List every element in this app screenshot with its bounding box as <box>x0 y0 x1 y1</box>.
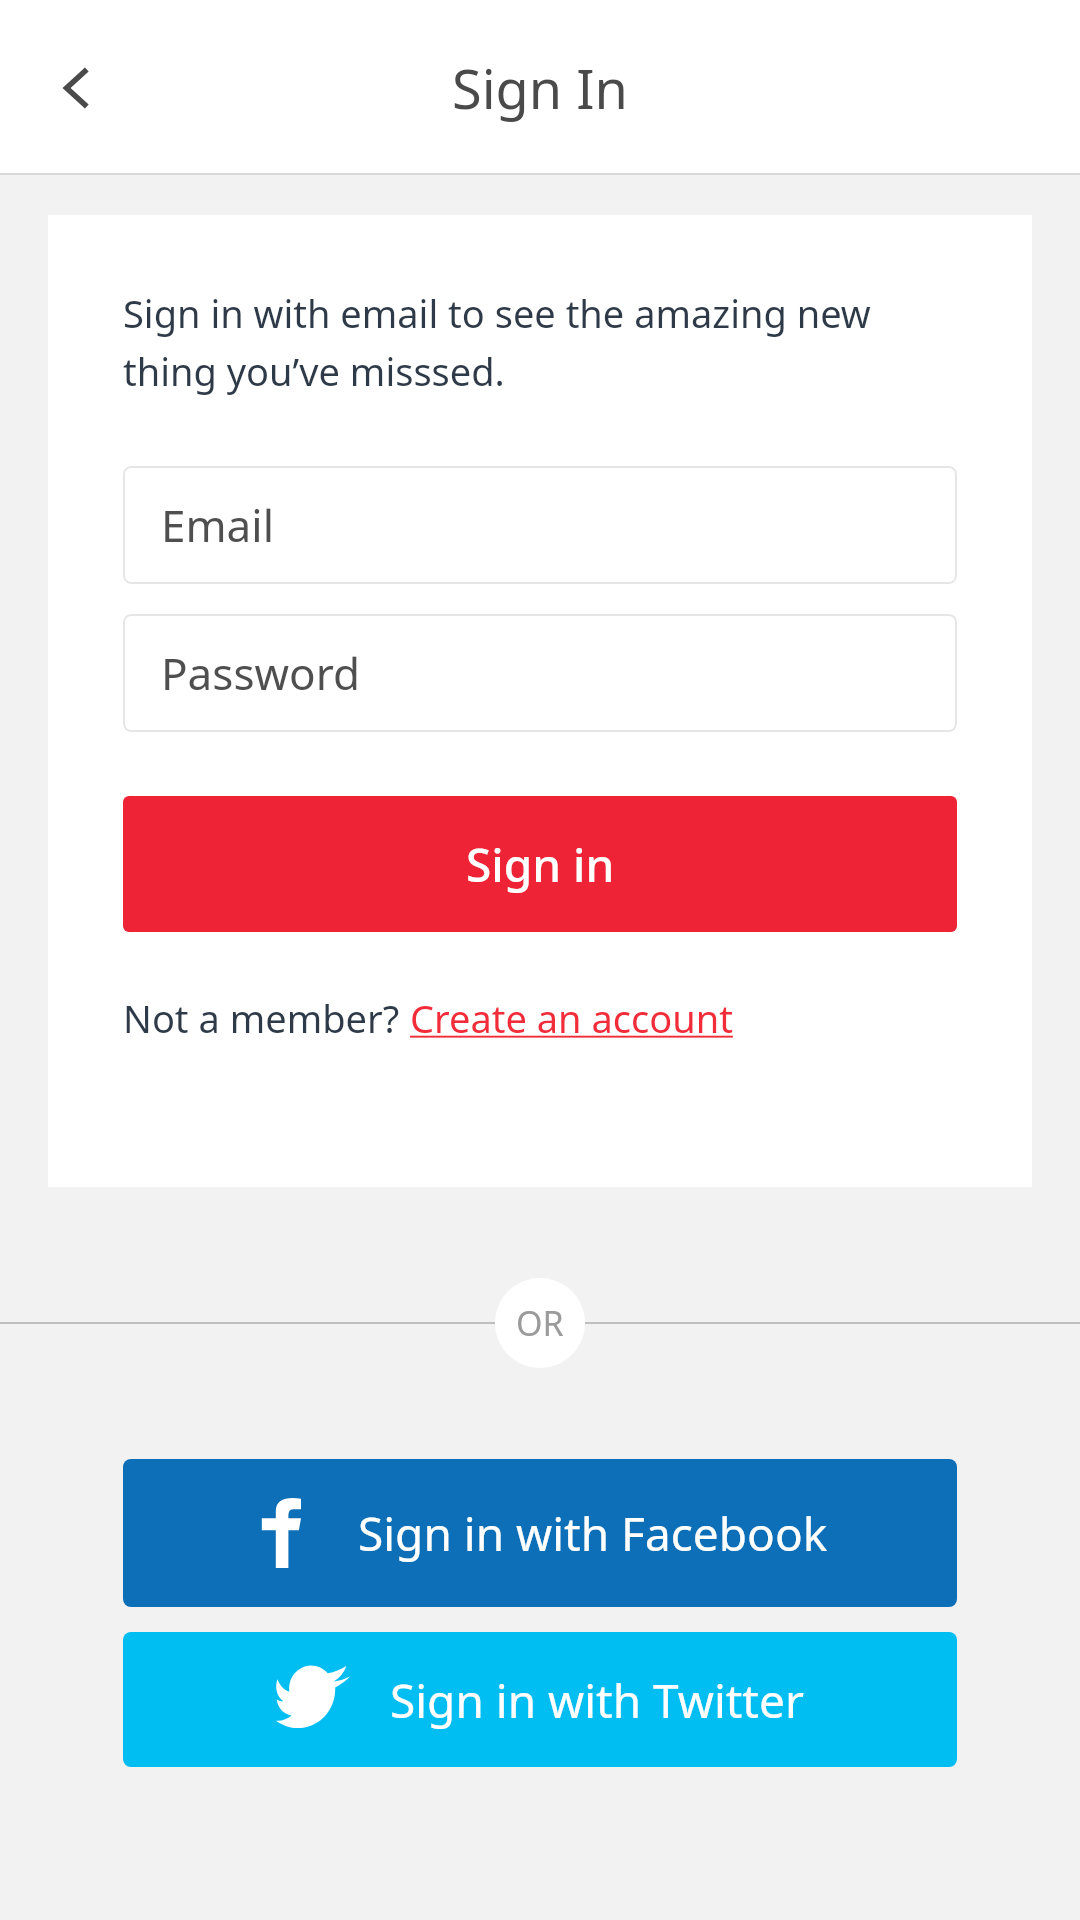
staticText: OR <box>516 1300 564 1346</box>
button[interactable]: Sign in with Facebook <box>123 1459 957 1607</box>
staticText: Sign In <box>452 51 628 125</box>
button[interactable]: Email <box>123 466 957 584</box>
staticText: Create an account <box>410 992 733 1044</box>
staticText: Password <box>161 643 361 703</box>
button[interactable]: Back <box>30 40 126 136</box>
staticText: Sign in <box>466 833 615 896</box>
button[interactable]: Create an account <box>410 992 733 1044</box>
button[interactable]: Sign in with Twitter <box>123 1632 957 1767</box>
staticText: Sign in with Facebook <box>358 1502 828 1565</box>
staticText: Not a member? <box>123 992 410 1044</box>
button[interactable]: Sign in <box>123 796 957 932</box>
staticText: Sign in with Twitter <box>390 1669 804 1732</box>
button[interactable]: Password <box>123 614 957 732</box>
staticText: Sign in with email to see the amazing ne… <box>123 287 957 397</box>
staticText: Email <box>161 495 274 555</box>
